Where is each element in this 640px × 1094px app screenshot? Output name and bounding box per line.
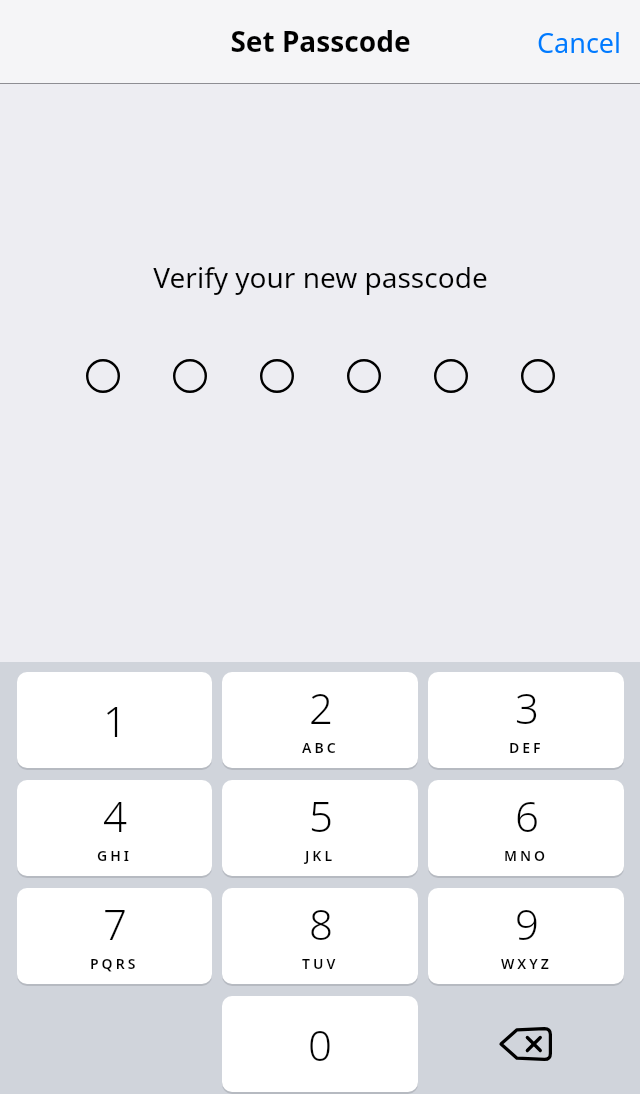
staticText: ABC bbox=[302, 738, 339, 757]
button[interactable]: 7 bbox=[17, 888, 212, 984]
button[interactable]: 0 bbox=[222, 996, 418, 1092]
staticText: 3 bbox=[515, 679, 539, 736]
staticText: TUV bbox=[302, 954, 339, 973]
staticText: Verify your new passcode bbox=[153, 258, 488, 296]
staticText: Set Passcode bbox=[230, 22, 411, 60]
staticText: MNO bbox=[504, 846, 549, 865]
staticText: 9 bbox=[515, 895, 539, 952]
button[interactable]: 2 bbox=[222, 672, 418, 768]
staticText: 0 bbox=[308, 1016, 332, 1073]
staticText: PQRS bbox=[90, 954, 139, 973]
staticText: 2 bbox=[309, 679, 333, 736]
button[interactable]: Delete bbox=[423, 996, 629, 1092]
staticText: 6 bbox=[515, 787, 539, 844]
button[interactable]: 8 bbox=[222, 888, 418, 984]
button[interactable]: 4 bbox=[17, 780, 212, 876]
button[interactable]: 6 bbox=[428, 780, 624, 876]
staticText: WXYZ bbox=[501, 954, 552, 973]
button[interactable]: 3 bbox=[428, 672, 624, 768]
staticText: 1 bbox=[103, 692, 127, 749]
staticText: 8 bbox=[309, 895, 333, 952]
staticText: 5 bbox=[309, 787, 333, 844]
staticText: DEF bbox=[509, 738, 544, 757]
staticText: 7 bbox=[103, 895, 127, 952]
button[interactable]: 5 bbox=[222, 780, 418, 876]
button[interactable]: 9 bbox=[428, 888, 624, 984]
button[interactable]: 1 bbox=[17, 672, 212, 768]
staticText: Cancel bbox=[537, 24, 622, 61]
button[interactable]: Cancel bbox=[519, 12, 640, 73]
staticText: 4 bbox=[103, 787, 127, 844]
staticText: JKL bbox=[305, 846, 336, 865]
staticText: GHI bbox=[97, 846, 132, 865]
